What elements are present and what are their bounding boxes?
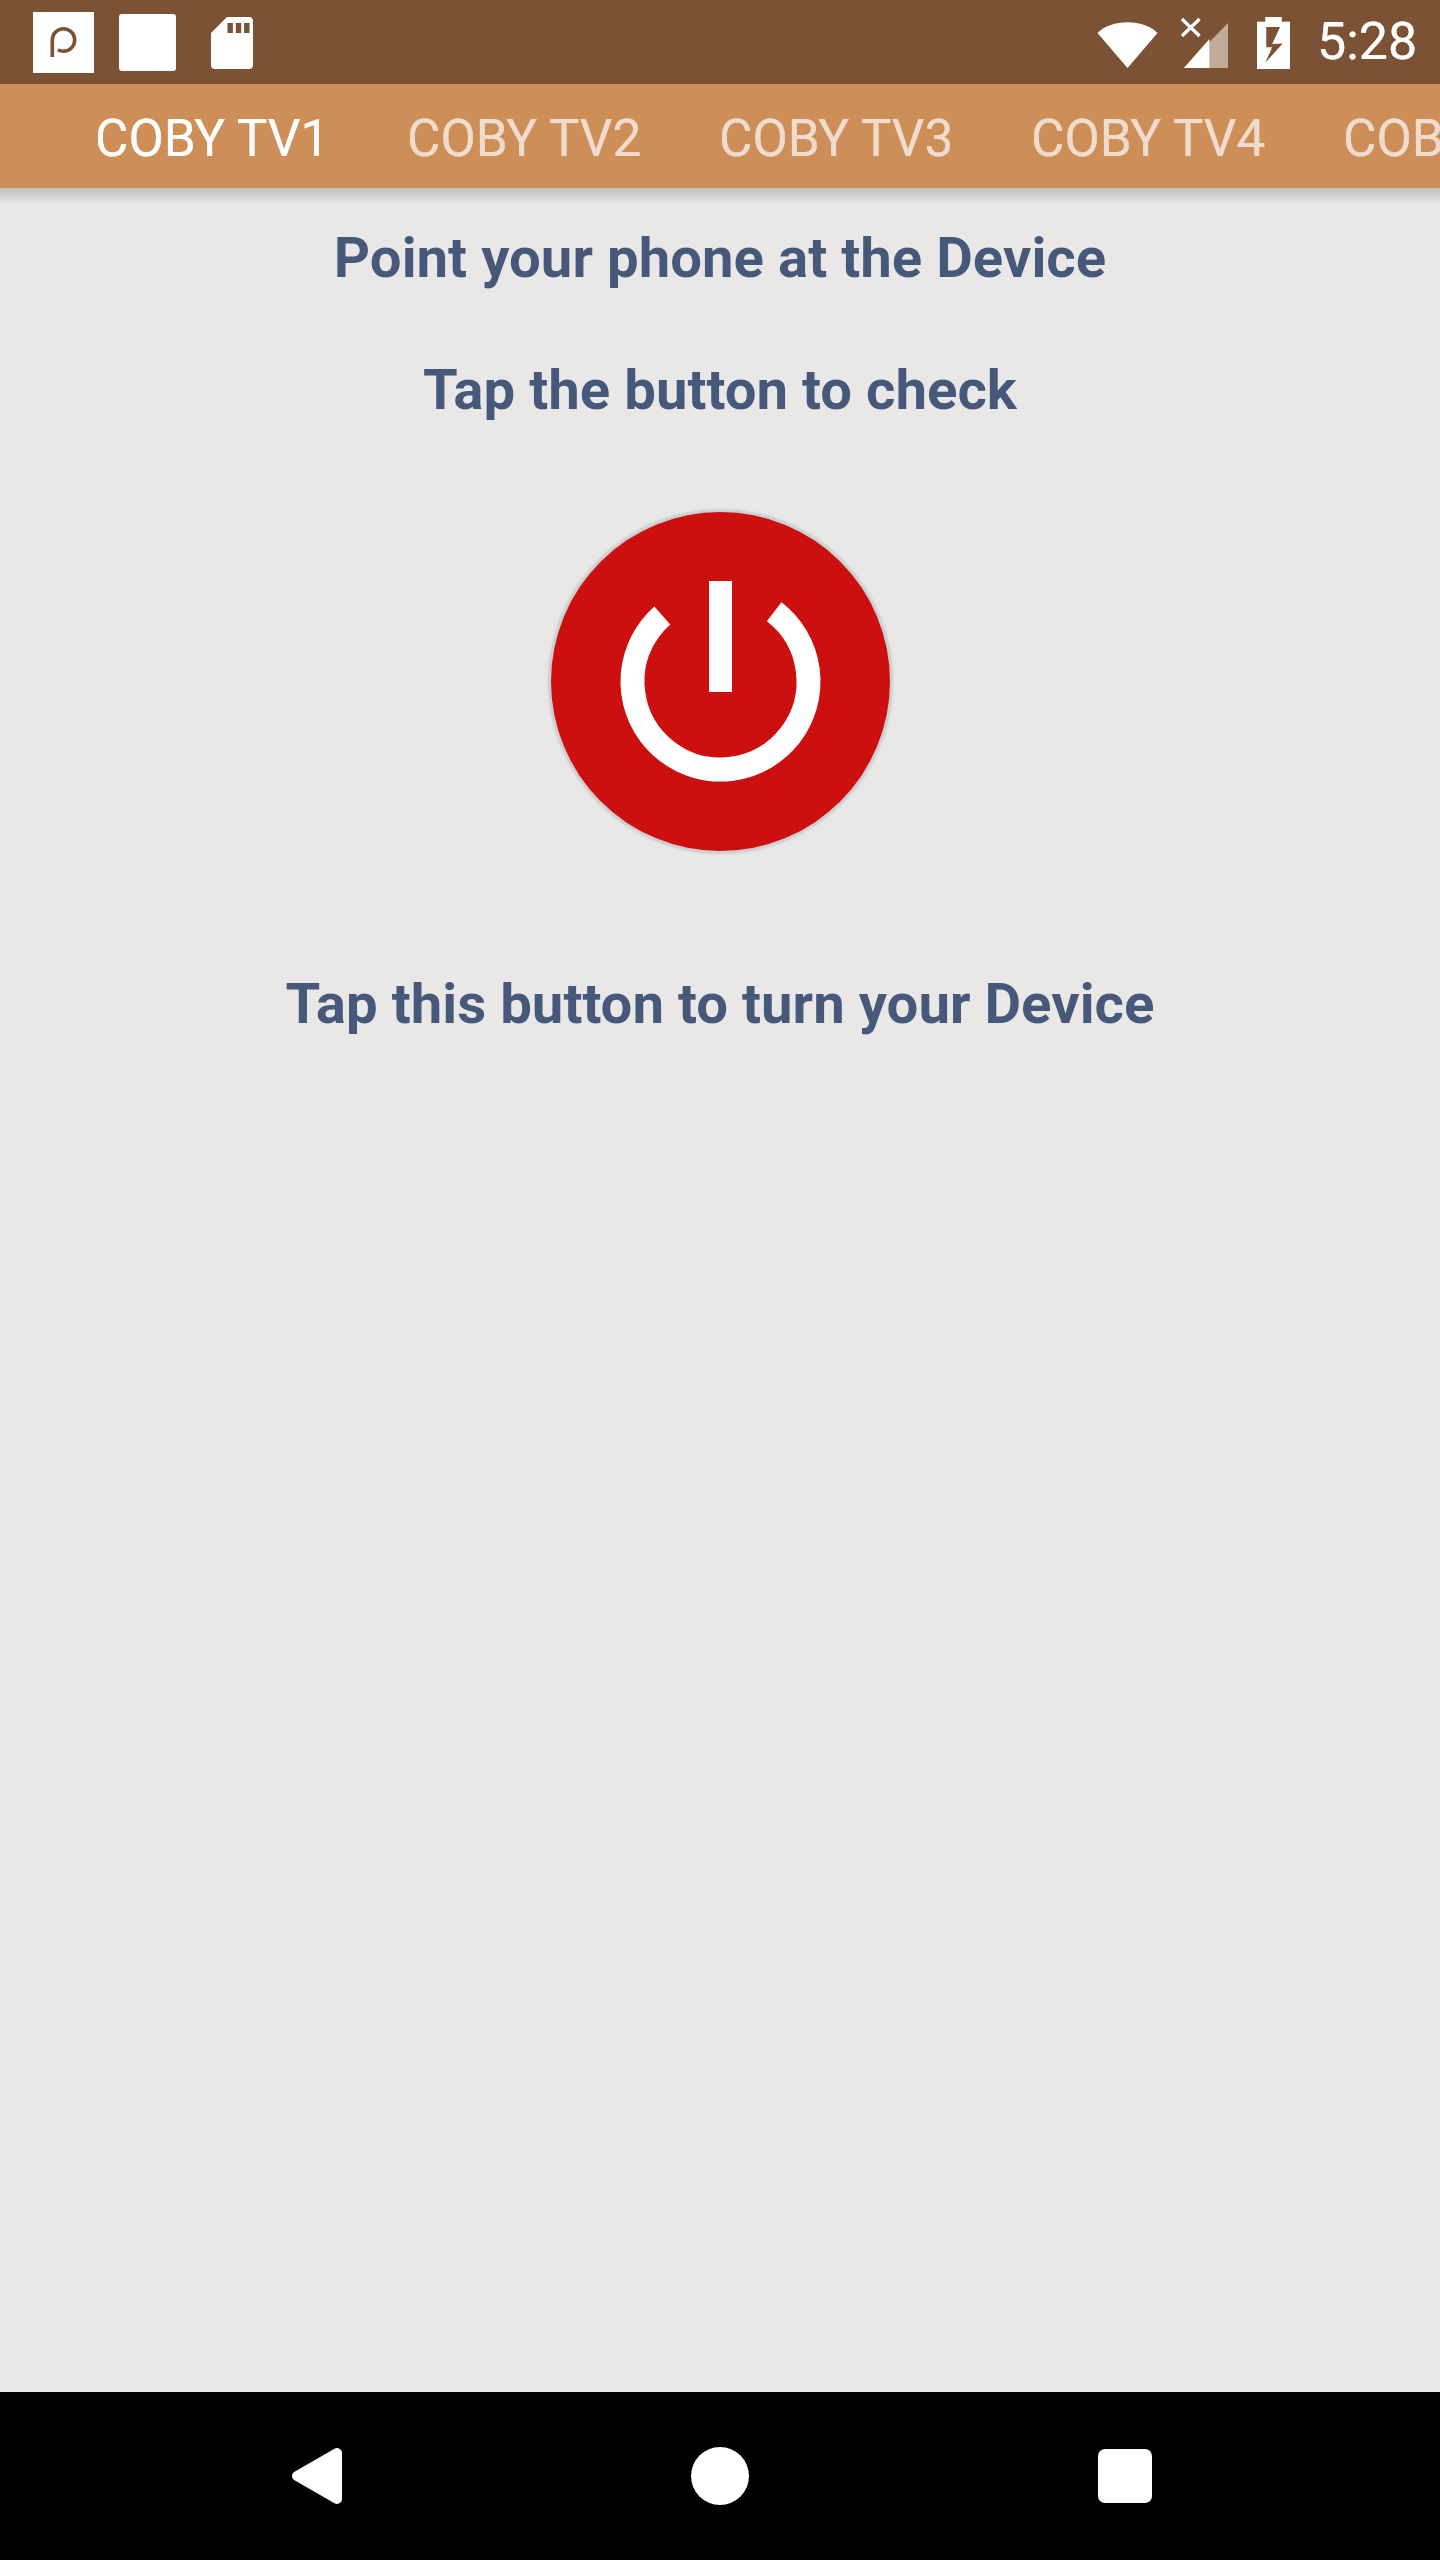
button[interactable]: COBY TV2 [368, 84, 680, 188]
staticText: COBY TV4 [1031, 108, 1266, 168]
button[interactable]: COBY TV5 [1304, 84, 1440, 188]
staticText: Tap this button to turn your Device [0, 971, 1440, 1037]
staticText: COBY TV5 [1343, 108, 1440, 168]
staticText: COBY TV1 [95, 108, 330, 168]
staticText: COBY TV2 [407, 108, 642, 168]
staticText: Point your phone at the Device [0, 225, 1440, 291]
button[interactable]: Home [665, 2421, 775, 2531]
staticText: 5:28 [1317, 11, 1418, 72]
button[interactable]: COBY TV1 [56, 84, 368, 188]
button[interactable]: Back [260, 2421, 370, 2531]
staticText: Tap the button to check [0, 357, 1440, 423]
button[interactable]: COBY TV3 [680, 84, 992, 188]
staticText: COBY TV3 [719, 108, 954, 168]
button[interactable]: Recent apps [1070, 2421, 1180, 2531]
button[interactable]: Power [547, 508, 894, 855]
button[interactable]: COBY TV4 [992, 84, 1304, 188]
